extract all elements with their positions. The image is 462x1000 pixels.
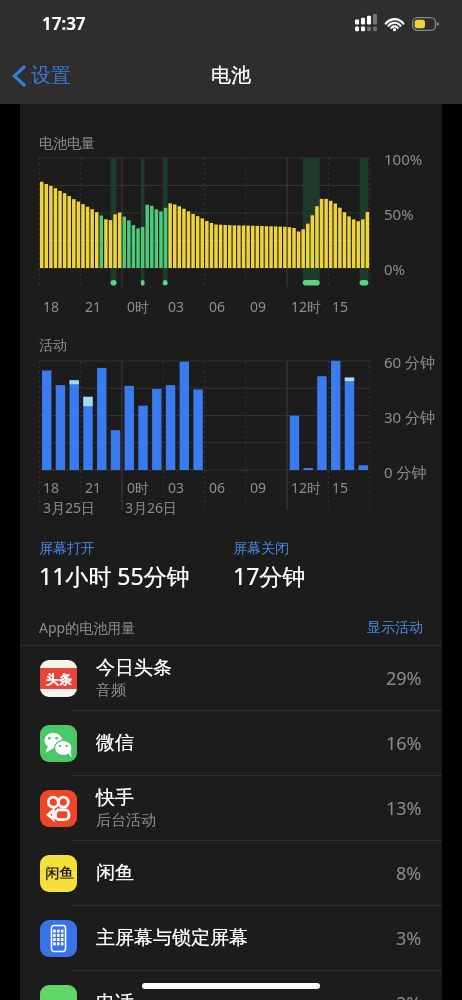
- staticText: 闲鱼: [96, 861, 134, 885]
- staticText: 0时: [127, 297, 150, 316]
- staticText: 8%: [396, 861, 422, 886]
- staticText: 显示活动: [367, 619, 423, 637]
- staticText: 21: [85, 478, 102, 497]
- staticText: 17:37: [42, 12, 86, 35]
- staticText: 0 分钟: [384, 462, 427, 482]
- staticText: 06: [209, 297, 226, 316]
- staticText: 03: [168, 297, 185, 316]
- staticText: 电池: [211, 63, 251, 88]
- staticText: 电池电量: [39, 135, 95, 153]
- staticText: 09: [250, 478, 267, 497]
- staticText: 30 分钟: [384, 407, 436, 427]
- staticText: 3月25日: [43, 498, 96, 517]
- staticText: 15: [332, 478, 349, 497]
- staticText: 29%: [386, 666, 422, 691]
- staticText: 100%: [384, 149, 423, 169]
- staticText: 03: [168, 478, 185, 497]
- button[interactable]: 闲鱼: [20, 841, 442, 906]
- staticText: 后台活动: [96, 811, 156, 830]
- staticText: 3月26日: [125, 498, 178, 517]
- staticText: 16%: [386, 731, 422, 756]
- staticText: 电话: [96, 991, 134, 1000]
- staticText: 09: [250, 297, 267, 316]
- button[interactable]: 设置: [0, 55, 85, 96]
- staticText: 0%: [384, 259, 406, 279]
- staticText: 2%: [396, 991, 422, 1000]
- button[interactable]: 主屏幕与锁定屏幕: [20, 906, 442, 971]
- staticText: 12时: [291, 478, 322, 497]
- staticText: 60 分钟: [384, 352, 436, 372]
- staticText: 12时: [291, 297, 322, 316]
- button[interactable]: 快手: [20, 776, 442, 841]
- button[interactable]: 头条: [20, 646, 442, 711]
- staticText: 头条: [46, 671, 72, 687]
- staticText: 微信: [96, 731, 134, 755]
- staticText: 快手: [96, 786, 134, 810]
- staticText: 06: [209, 478, 226, 497]
- button[interactable]: 显示活动: [367, 619, 423, 637]
- button[interactable]: 电话: [20, 971, 442, 1000]
- staticText: 15: [332, 297, 349, 316]
- staticText: 主屏幕与锁定屏幕: [96, 926, 248, 950]
- staticText: 屏幕关闭: [233, 540, 289, 558]
- staticText: 音频: [96, 681, 126, 700]
- staticText: 今日头条: [96, 656, 172, 680]
- staticText: App的电池用量: [39, 618, 136, 637]
- staticText: 17分钟: [233, 560, 306, 591]
- staticText: 闲鱼: [45, 865, 73, 883]
- button[interactable]: 微信: [20, 711, 442, 776]
- staticText: 18: [43, 297, 60, 316]
- staticText: 设置: [31, 63, 71, 88]
- staticText: 屏幕打开: [39, 540, 95, 558]
- staticText: 18: [43, 478, 60, 497]
- staticText: 21: [85, 297, 102, 316]
- staticText: 活动: [39, 337, 67, 355]
- staticText: 3%: [396, 926, 422, 951]
- staticText: 50%: [384, 204, 414, 224]
- staticText: 13%: [386, 796, 422, 821]
- staticText: 11小时 55分钟: [39, 560, 190, 591]
- staticText: 0时: [127, 478, 150, 497]
